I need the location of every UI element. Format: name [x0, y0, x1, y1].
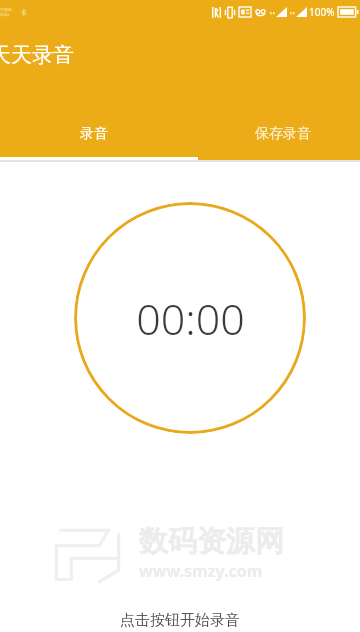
staticText: 中国电	[0, 7, 12, 12]
staticText: 100%	[309, 5, 335, 19]
button[interactable]: 录音	[0, 116, 198, 160]
staticText: www.smzy.com	[139, 560, 263, 582]
staticText: 保存录音	[255, 125, 311, 143]
staticText: 天天录音	[0, 42, 74, 68]
staticText: 点击按钮开始录音	[120, 611, 240, 630]
staticText: 录音	[80, 125, 108, 143]
button[interactable]: 保存录音	[198, 116, 360, 160]
staticText: 00:00	[136, 289, 245, 348]
staticText: 信4G	[0, 12, 10, 17]
staticText: 数码资源网	[139, 523, 284, 560]
button[interactable]: Start recording	[74, 202, 306, 434]
